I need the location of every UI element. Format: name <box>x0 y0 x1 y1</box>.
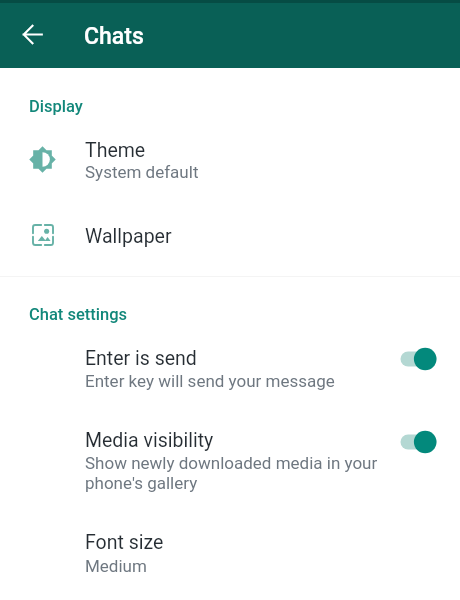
staticText: Display <box>29 97 83 116</box>
button[interactable]: Back <box>12 14 52 54</box>
staticText: Theme <box>85 139 146 162</box>
staticText: Enter is send <box>85 347 197 370</box>
staticText: Media visibility <box>85 429 214 452</box>
staticText: System default <box>85 162 199 182</box>
button[interactable]: Enter is send <box>0 338 460 400</box>
button[interactable]: Media visibility <box>0 420 460 502</box>
staticText: Enter key will send your message <box>85 371 335 391</box>
staticText: Chats <box>84 23 144 50</box>
staticText: Wallpaper <box>85 225 172 248</box>
staticText: Medium <box>85 556 147 576</box>
button[interactable]: Font size <box>0 521 460 583</box>
button[interactable]: Enter is send toggle, on <box>397 345 451 373</box>
staticText: Font size <box>85 531 164 554</box>
staticText: Show newly downloaded media in your phon… <box>85 453 378 493</box>
button[interactable]: Theme <box>0 130 460 190</box>
button[interactable]: Media visibility toggle, on <box>397 428 451 456</box>
button[interactable]: Wallpaper <box>0 210 460 262</box>
staticText: Chat settings <box>29 305 128 324</box>
